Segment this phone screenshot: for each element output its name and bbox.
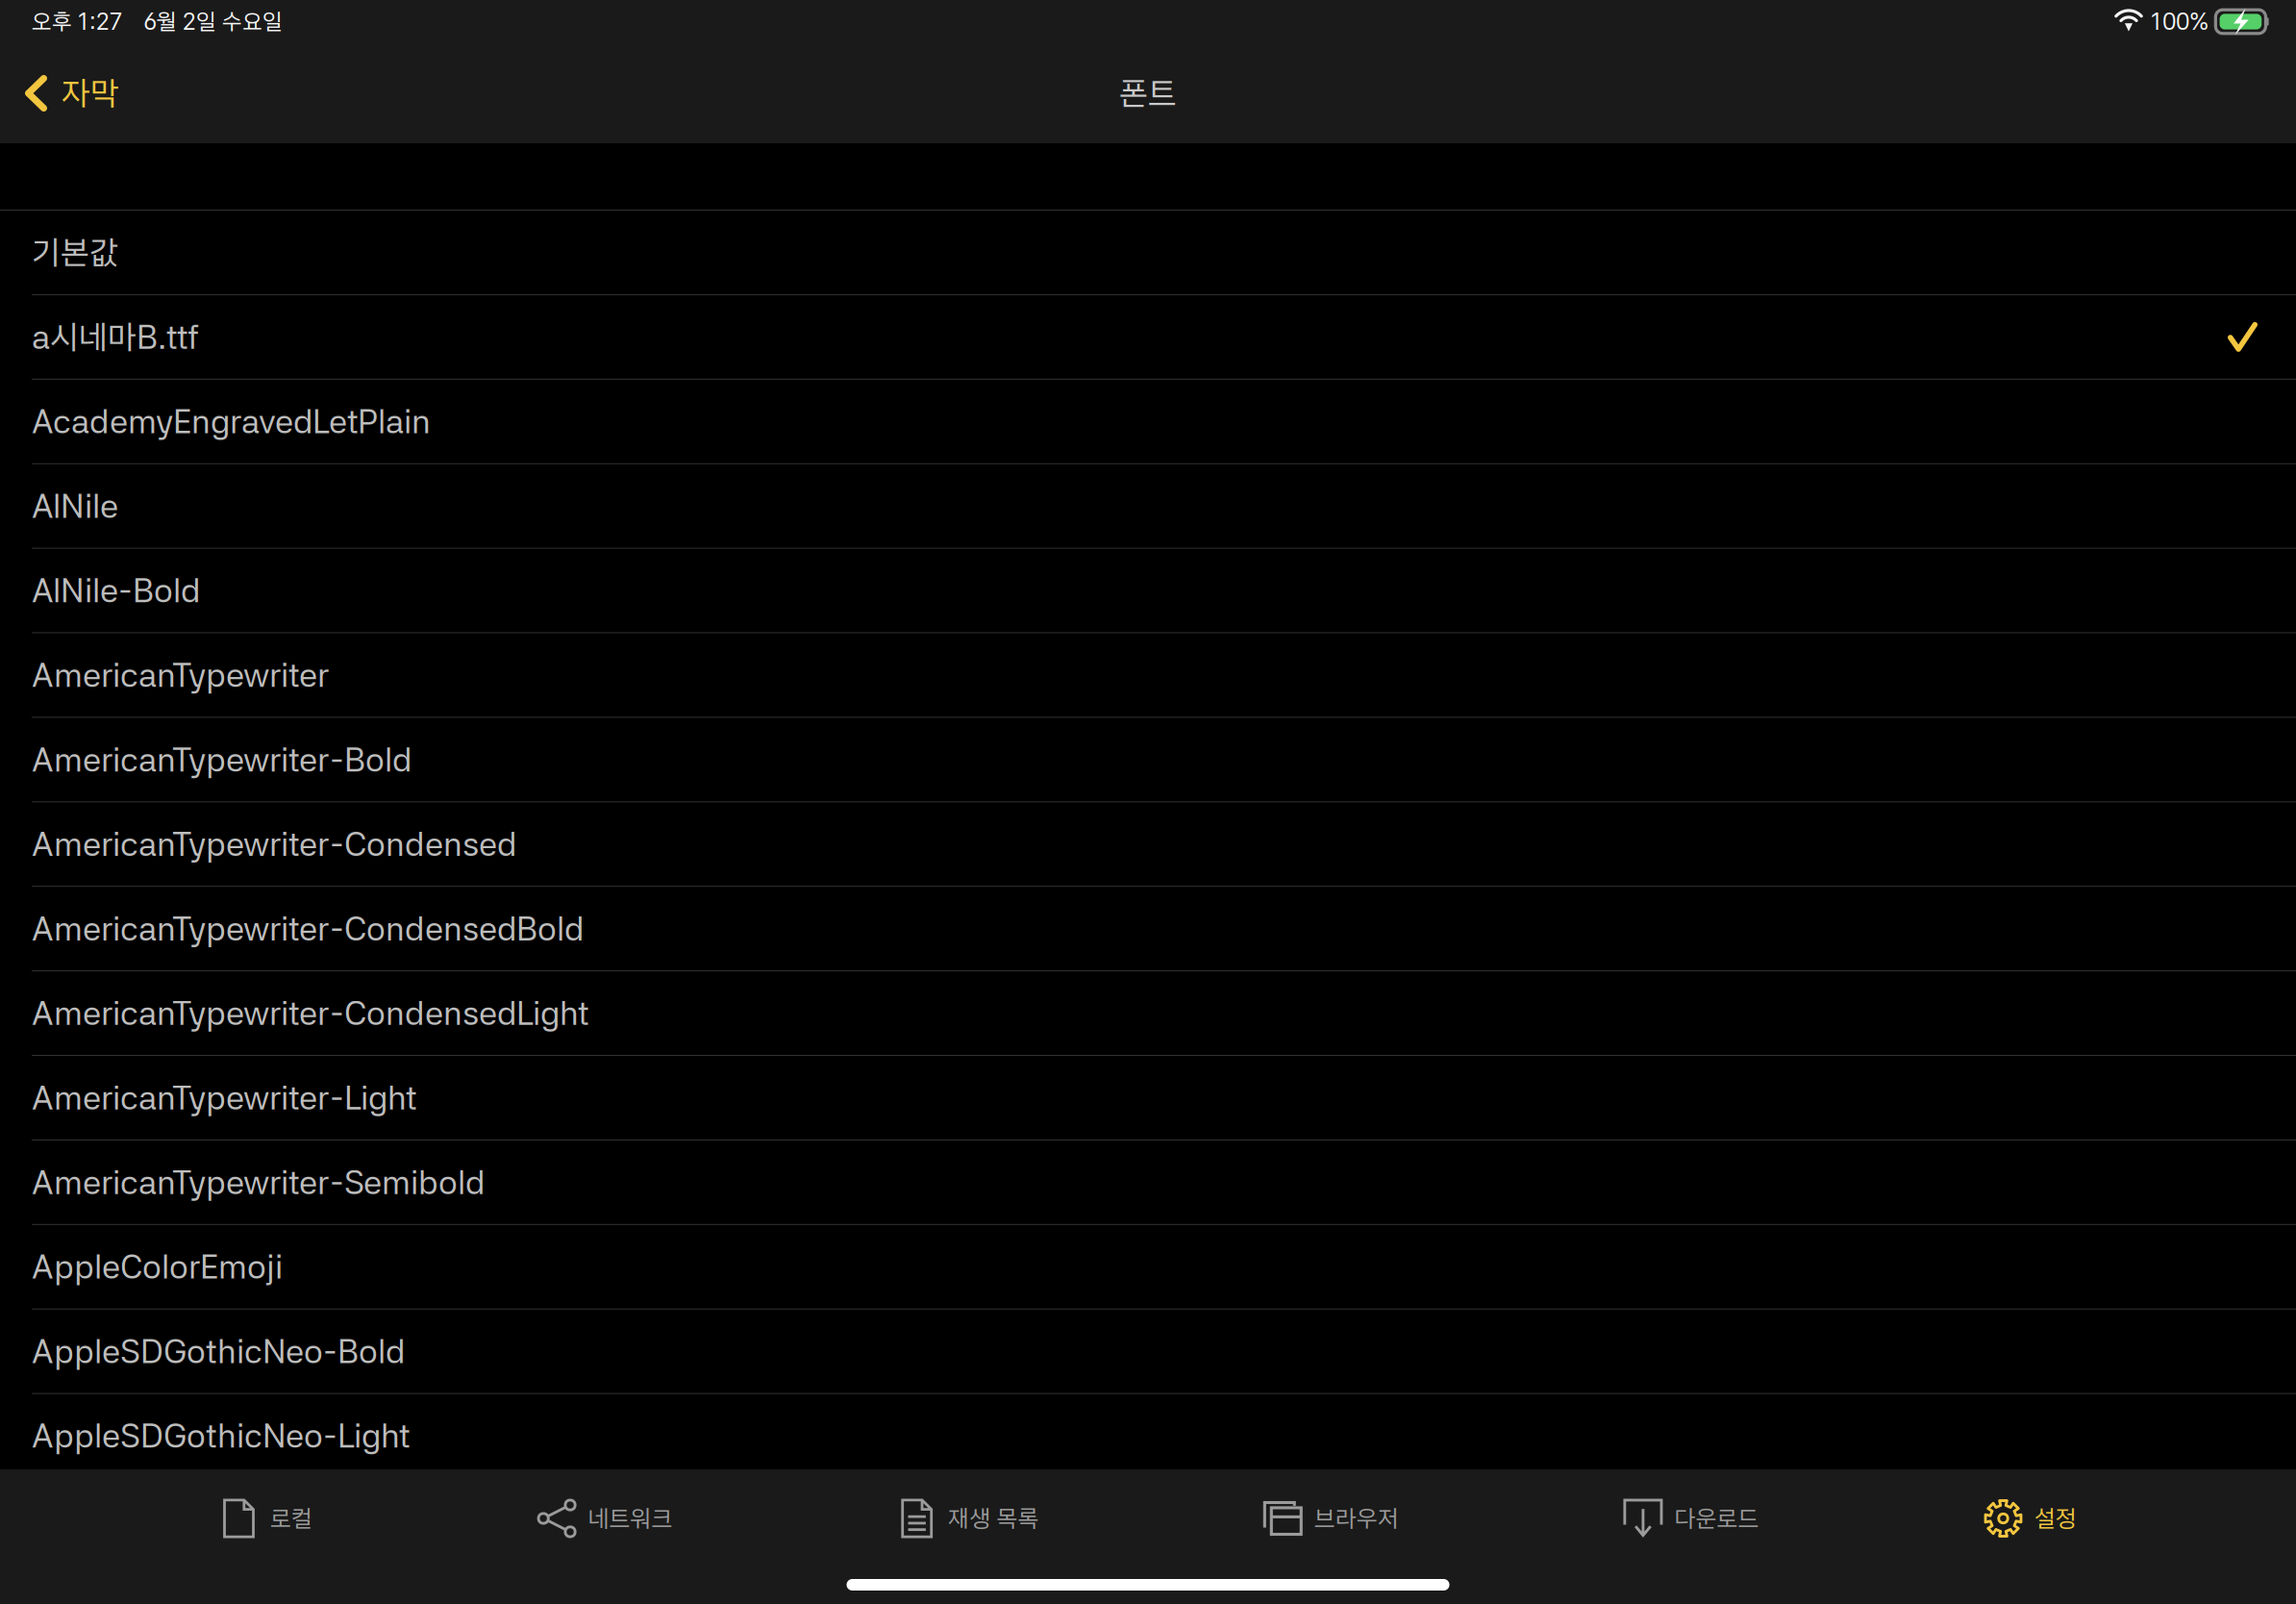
- button[interactable]: 네트워크: [531, 1469, 678, 1567]
- staticText: 100%: [2151, 8, 2209, 35]
- staticText: 다운로드: [1674, 1504, 1759, 1533]
- staticText: AlNile-Bold: [32, 571, 201, 610]
- button[interactable]: 브라우저: [1257, 1469, 1405, 1567]
- button[interactable]: 재생 목록: [891, 1469, 1044, 1567]
- staticText: AlNile: [32, 486, 118, 526]
- staticText: 폰트: [1119, 73, 1177, 113]
- staticText: AppleSDGothicNeo-Bold: [32, 1331, 406, 1371]
- staticText: 브라우저: [1314, 1504, 1399, 1533]
- staticText: 자막: [62, 73, 119, 113]
- button[interactable]: AlNile: [0, 464, 2296, 549]
- staticText: a시네마B.ttf: [32, 317, 199, 357]
- button[interactable]: 기본값: [0, 211, 2296, 295]
- button[interactable]: AppleSDGothicNeo-Bold: [0, 1309, 2296, 1394]
- staticText: 로컬: [270, 1504, 312, 1533]
- button[interactable]: AmericanTypewriter-CondensedBold: [0, 887, 2296, 971]
- staticText: 6월 2일 수요일: [143, 8, 283, 35]
- staticText: AcademyEngravedLetPlain: [32, 402, 431, 441]
- staticText: 재생 목록: [948, 1504, 1039, 1533]
- staticText: 오후 1:27: [32, 8, 122, 35]
- button[interactable]: a시네마B.ttf: [0, 295, 2296, 380]
- button[interactable]: AmericanTypewriter-Light: [0, 1056, 2296, 1140]
- button[interactable]: AmericanTypewriter-Condensed: [0, 802, 2296, 887]
- staticText: AppleColorEmoji: [32, 1247, 283, 1287]
- button[interactable]: 설정: [1978, 1469, 2083, 1567]
- staticText: 기본값: [32, 233, 118, 272]
- staticText: AmericanTypewriter-Bold: [32, 740, 412, 779]
- staticText: AmericanTypewriter-Light: [32, 1078, 416, 1118]
- staticText: AmericanTypewriter-Condensed: [32, 824, 517, 864]
- staticText: AmericanTypewriter: [32, 655, 330, 695]
- button[interactable]: AlNile-Bold: [0, 549, 2296, 633]
- button[interactable]: AmericanTypewriter: [0, 633, 2296, 718]
- staticText: AmericanTypewriter-CondensedLight: [32, 993, 588, 1033]
- button[interactable]: AmericanTypewriter-Semibold: [0, 1140, 2296, 1225]
- staticText: AppleSDGothicNeo-Light: [32, 1416, 410, 1456]
- button[interactable]: 자막: [0, 43, 140, 143]
- staticText: AmericanTypewriter-Semibold: [32, 1162, 486, 1202]
- button[interactable]: AppleColorEmoji: [0, 1225, 2296, 1309]
- staticText: 네트워크: [588, 1504, 673, 1533]
- button[interactable]: 다운로드: [1618, 1469, 1765, 1567]
- staticText: AmericanTypewriter-CondensedBold: [32, 909, 585, 949]
- button[interactable]: AmericanTypewriter-CondensedLight: [0, 971, 2296, 1056]
- button[interactable]: AcademyEngravedLetPlain: [0, 380, 2296, 464]
- button[interactable]: AmericanTypewriter-Bold: [0, 718, 2296, 802]
- button[interactable]: 로컬: [213, 1469, 318, 1567]
- staticText: 설정: [2034, 1504, 2077, 1533]
- button[interactable]: AppleSDGothicNeo-Light: [0, 1394, 2296, 1479]
